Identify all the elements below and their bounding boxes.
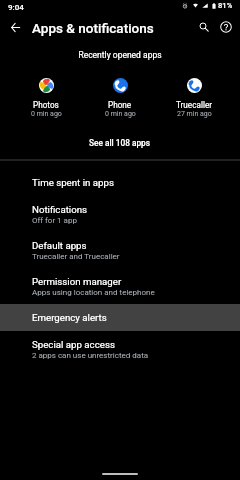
button[interactable]: Phone — [83, 78, 157, 118]
staticText: 2 apps can use unrestricted data — [32, 351, 149, 360]
staticText: Off for 1 app — [32, 216, 77, 225]
button[interactable]: Special app access — [0, 331, 240, 367]
button[interactable]: Truecaller — [157, 78, 231, 118]
staticText: Apps using location and telephone — [32, 288, 155, 297]
staticText: Permission manager — [32, 276, 122, 287]
staticText: See all 108 apps — [89, 138, 151, 148]
button[interactable]: Photos — [9, 78, 83, 118]
staticText: Truecaller and Truecaller — [32, 252, 120, 261]
staticText: Default apps — [32, 240, 87, 251]
staticText: Emergency alerts — [32, 312, 107, 323]
button[interactable]: Help — [215, 16, 237, 38]
staticText: Time spent in apps — [32, 177, 114, 188]
button[interactable]: Search — [193, 16, 215, 38]
staticText: Photos — [33, 100, 59, 110]
button[interactable]: Back — [4, 16, 26, 38]
staticText: Apps & notifications — [32, 20, 154, 36]
staticText: Phone — [108, 100, 132, 110]
staticText: 0 min ago — [105, 110, 136, 118]
staticText: 27 min ago — [177, 110, 212, 118]
button[interactable]: Time spent in apps — [0, 169, 240, 196]
staticText: 9:04 — [8, 3, 24, 12]
staticText: 0 min ago — [31, 110, 62, 118]
staticText: Special app access — [32, 339, 115, 350]
button[interactable]: Default apps — [0, 232, 240, 268]
button[interactable]: Notifications — [0, 196, 240, 232]
button[interactable]: Permission manager — [0, 268, 240, 304]
staticText: Notifications — [32, 204, 88, 215]
button[interactable]: Emergency alerts — [0, 304, 240, 331]
button[interactable]: See all 108 apps — [0, 132, 240, 154]
staticText: 81% — [218, 1, 233, 10]
staticText: Recently opened apps — [0, 50, 240, 60]
staticText: Truecaller — [176, 100, 213, 110]
